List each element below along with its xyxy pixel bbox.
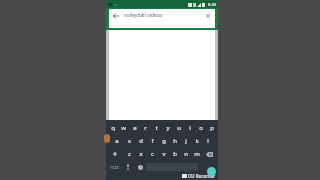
staticText: q: [111, 124, 115, 132]
staticText: DU Recorder: [188, 173, 216, 179]
staticText: w: [121, 124, 126, 132]
button[interactable]: c: [147, 148, 158, 160]
staticText: f: [151, 137, 154, 145]
button[interactable]: v: [158, 148, 169, 160]
button[interactable]: f: [147, 135, 158, 147]
staticText: a: [115, 137, 119, 145]
staticText: t: [155, 124, 158, 132]
button[interactable]: n: [180, 148, 191, 160]
button[interactable]: b: [169, 148, 180, 160]
staticText: h: [173, 137, 177, 145]
staticText: o: [199, 124, 203, 132]
button[interactable]: s: [123, 135, 135, 147]
button[interactable]: w: [118, 122, 129, 134]
staticText: p: [210, 124, 214, 132]
staticText: 8:30: [208, 2, 216, 7]
staticText: m: [194, 150, 200, 158]
button[interactable]: p: [206, 122, 217, 134]
staticText: u: [177, 124, 181, 132]
staticText: n: [184, 150, 188, 158]
button[interactable]: t: [151, 122, 162, 134]
button[interactable]: d: [135, 135, 147, 147]
button[interactable]: k: [191, 135, 202, 147]
button[interactable]: e: [129, 122, 140, 134]
staticText: b: [173, 150, 177, 158]
staticText: j: [185, 137, 187, 145]
button[interactable]: z: [123, 148, 135, 160]
button[interactable]: Backspace: [202, 148, 217, 160]
staticText: s: [128, 137, 131, 145]
button[interactable]: x: [135, 148, 147, 160]
button[interactable]: g: [158, 135, 169, 147]
button[interactable]: q: [107, 122, 118, 134]
button[interactable]: i: [184, 122, 195, 134]
button[interactable]: u: [173, 122, 184, 134]
staticText: volleyball videos: [124, 12, 163, 19]
button[interactable]: j: [180, 135, 191, 147]
staticText: e: [133, 124, 137, 132]
staticText: y: [166, 124, 170, 132]
button[interactable]: a: [111, 135, 123, 147]
staticText: k: [195, 137, 199, 145]
staticText: z: [128, 150, 131, 158]
staticText: ?123: [110, 165, 119, 170]
button[interactable]: [198, 161, 217, 173]
button[interactable]: y: [162, 122, 173, 134]
staticText: g: [162, 137, 166, 145]
button[interactable]: Clear: [204, 12, 212, 20]
button[interactable]: o: [195, 122, 206, 134]
staticText: d: [139, 137, 143, 145]
button[interactable]: Back: [112, 12, 120, 20]
button[interactable]: Shift: [107, 148, 123, 160]
staticText: l: [207, 137, 209, 145]
button[interactable]: Recorder: [207, 167, 216, 176]
button[interactable]: ?123: [107, 161, 122, 173]
button[interactable]: r: [140, 122, 151, 134]
staticText: i: [189, 124, 191, 132]
button[interactable]: Emoji: [134, 161, 146, 173]
staticText: r: [144, 124, 147, 132]
button[interactable]: m: [191, 148, 202, 160]
button[interactable]: Voice input: [122, 161, 134, 173]
staticText: x: [139, 150, 143, 158]
button[interactable]: h: [169, 135, 180, 147]
button[interactable]: l: [202, 135, 213, 147]
staticText: v: [162, 150, 166, 158]
staticText: c: [151, 150, 154, 158]
button[interactable]: Back: [109, 9, 215, 22]
